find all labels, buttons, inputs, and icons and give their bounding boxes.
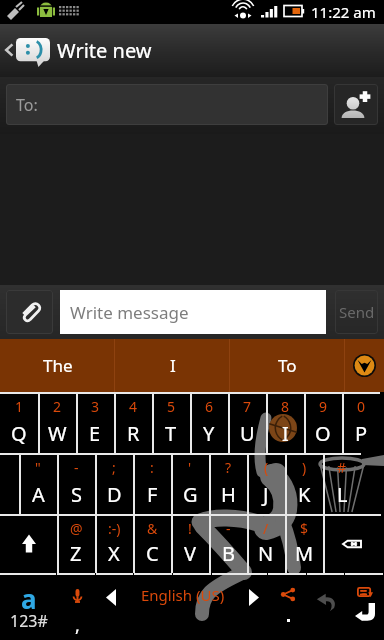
- staticText: 7: [243, 397, 252, 416]
- staticText: To:: [16, 94, 38, 116]
- button[interactable]: 5: [152, 392, 190, 453]
- staticText: C: [146, 540, 159, 567]
- staticText: Write message: [70, 301, 189, 324]
- staticText: $: [300, 519, 309, 538]
- staticText: ): [302, 458, 307, 477]
- staticText: To: [278, 354, 297, 377]
- staticText: &: [147, 519, 158, 538]
- button[interactable]: Enter: [346, 573, 384, 640]
- staticText: I: [282, 420, 289, 447]
- staticText: ": [35, 458, 41, 477]
- button[interactable]: 4: [114, 392, 152, 453]
- staticText: N: [258, 540, 274, 567]
- staticText: ;: [112, 458, 116, 477]
- staticText: G: [183, 481, 198, 508]
- staticText: 4: [129, 397, 138, 416]
- button[interactable]: The: [0, 339, 115, 392]
- button[interactable]: $: [285, 514, 323, 573]
- button[interactable]: I: [115, 339, 230, 392]
- button[interactable]: Send: [335, 290, 378, 334]
- staticText: Q: [11, 420, 27, 447]
- button[interactable]: &: [133, 514, 171, 573]
- button[interactable]: 8: [266, 392, 304, 453]
- button[interactable]: #: [323, 453, 361, 514]
- staticText: Y: [203, 420, 215, 447]
- staticText: :: [150, 458, 154, 477]
- other: Move cursor right: [249, 589, 259, 606]
- button[interactable]: Write new: [0, 24, 384, 77]
- staticText: 11:22 am: [311, 2, 376, 22]
- button[interactable]: Attach: [6, 290, 53, 334]
- staticText: :-): [108, 519, 121, 538]
- staticText: ,: [75, 613, 80, 638]
- button[interactable]: ": [19, 453, 57, 514]
- button[interactable]: 1: [0, 392, 38, 453]
- button[interactable]: :: [133, 453, 171, 514]
- staticText: F: [147, 481, 158, 508]
- button[interactable]: 7: [228, 392, 266, 453]
- staticText: P: [355, 420, 368, 447]
- staticText: 0: [357, 397, 366, 416]
- staticText: H: [221, 481, 236, 508]
- button[interactable]: Voice input: [58, 573, 96, 640]
- button[interactable]: Write message: [60, 290, 326, 334]
- button[interactable]: Backspace: [323, 514, 381, 573]
- staticText: 9: [319, 397, 328, 416]
- button[interactable]: :-): [95, 514, 133, 573]
- button[interactable]: Undo: [308, 573, 345, 640]
- button[interactable]: ': [171, 453, 209, 514]
- button[interactable]: 2: [38, 392, 76, 453]
- button[interactable]: ;: [95, 453, 133, 514]
- staticText: E: [89, 420, 101, 447]
- staticText: W: [48, 420, 67, 447]
- button[interactable]: Shift: [0, 514, 57, 573]
- staticText: 123#: [10, 610, 48, 632]
- button[interactable]: 9: [304, 392, 342, 453]
- staticText: 5: [167, 397, 176, 416]
- button[interactable]: English (US): [97, 573, 268, 640]
- staticText: The: [43, 354, 73, 377]
- staticText: A: [32, 481, 45, 508]
- staticText: T: [165, 420, 177, 447]
- staticText: !: [188, 519, 192, 538]
- staticText: J: [263, 481, 269, 508]
- button[interactable]: !: [171, 514, 209, 573]
- staticText: S: [71, 481, 82, 508]
- staticText: -: [226, 519, 231, 538]
- staticText: #: [337, 458, 347, 477]
- button[interactable]: 3: [76, 392, 114, 453]
- button[interactable]: To: [230, 339, 345, 392]
- staticText: U: [240, 420, 255, 447]
- button[interactable]: 6: [190, 392, 228, 453]
- button[interactable]: -: [209, 514, 247, 573]
- button[interactable]: (: [247, 453, 285, 514]
- button[interactable]: Keyboard settings: [345, 339, 384, 392]
- staticText: 1: [15, 397, 24, 416]
- staticText: 3: [91, 397, 100, 416]
- staticText: Write new: [57, 37, 152, 64]
- button[interactable]: /: [247, 514, 285, 573]
- staticText: O: [315, 420, 331, 447]
- button[interactable]: a: [0, 573, 57, 640]
- staticText: (: [264, 458, 269, 477]
- staticText: K: [298, 481, 311, 508]
- button[interactable]: @: [57, 514, 95, 573]
- staticText: D: [107, 481, 122, 508]
- staticText: a: [21, 581, 37, 616]
- staticText: R: [127, 420, 140, 447]
- button[interactable]: Share: [269, 573, 307, 640]
- button[interactable]: Add contact: [334, 84, 378, 125]
- staticText: I: [170, 354, 176, 377]
- staticText: X: [108, 540, 120, 567]
- other: Move cursor left: [106, 589, 116, 606]
- staticText: ?: [225, 458, 232, 477]
- button[interactable]: -: [57, 453, 95, 514]
- button[interactable]: To:: [6, 84, 328, 125]
- button[interactable]: 0: [342, 392, 380, 453]
- button[interactable]: ): [285, 453, 323, 514]
- staticText: V: [184, 540, 196, 567]
- staticText: 6: [205, 397, 214, 416]
- button[interactable]: ?: [209, 453, 247, 514]
- staticText: B: [222, 540, 235, 567]
- staticText: 8: [281, 397, 290, 416]
